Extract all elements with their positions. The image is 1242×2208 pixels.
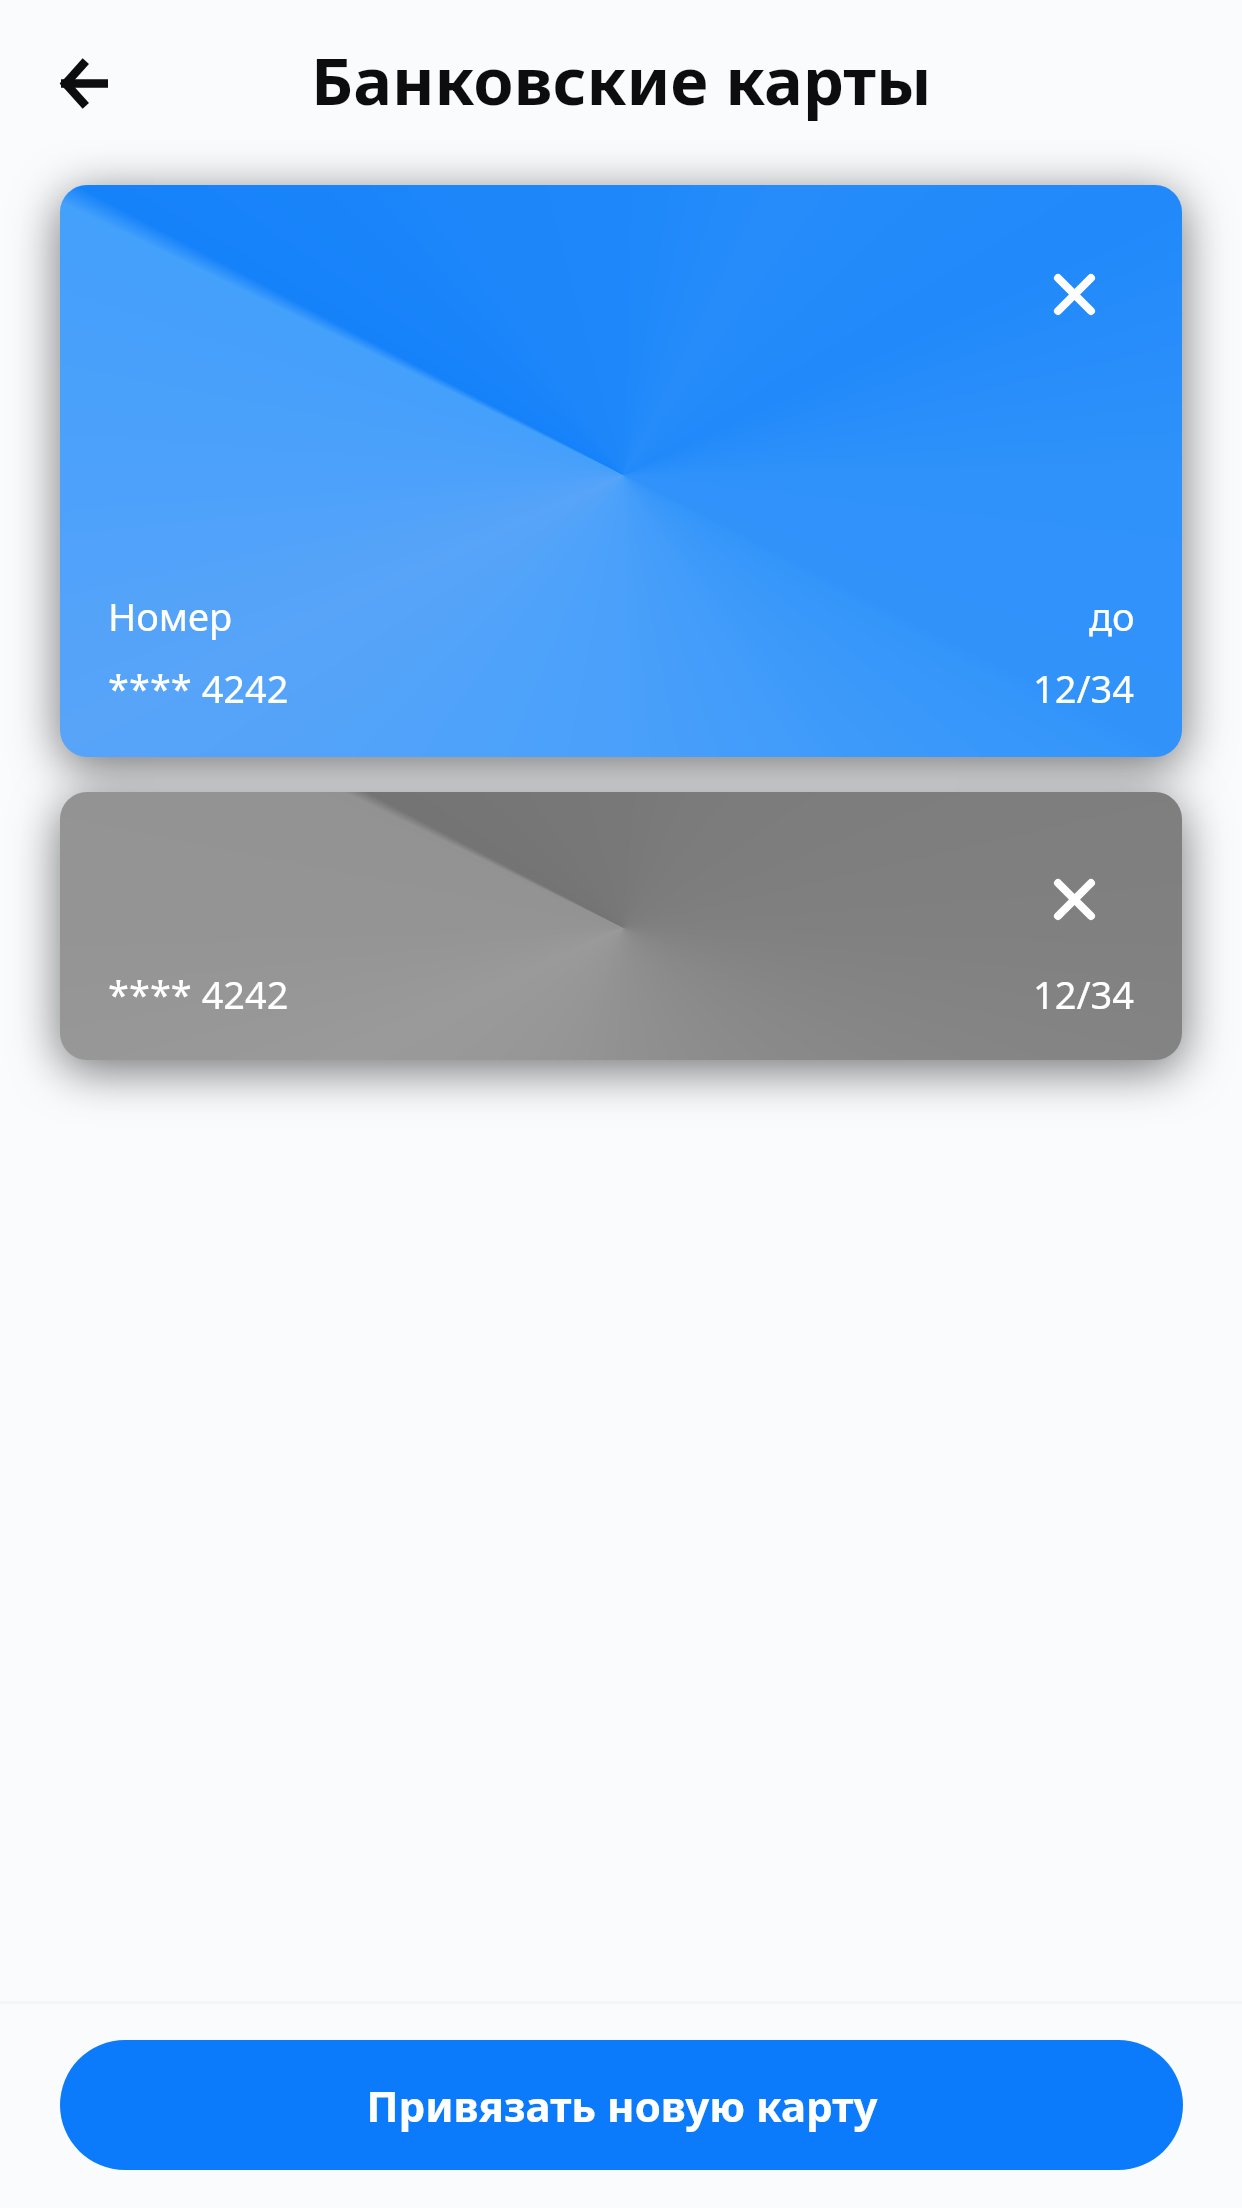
button[interactable]: Назад: [49, 48, 120, 119]
button[interactable]: Удалить карту: [1031, 251, 1117, 337]
staticText: Номер: [108, 590, 233, 642]
staticText: **** 4242: [108, 968, 289, 1020]
staticText: 12/34: [1033, 968, 1135, 1020]
staticText: Привязать новую карту: [366, 2077, 878, 2134]
staticText: Банковские карты: [311, 36, 932, 125]
staticText: 12/34: [1033, 662, 1135, 714]
staticText: **** 4242: [108, 662, 289, 714]
button[interactable]: Удалить карту: [60, 792, 1182, 1060]
button[interactable]: Удалить карту: [1031, 856, 1117, 942]
button[interactable]: Удалить карту: [60, 185, 1182, 757]
staticText: до: [1089, 590, 1135, 642]
button[interactable]: Привязать новую карту: [60, 2040, 1183, 2170]
